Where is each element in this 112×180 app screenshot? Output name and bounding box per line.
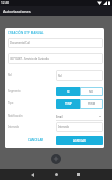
button[interactable]: AGREGAR [56, 136, 103, 145]
button[interactable]: Recent apps [67, 169, 90, 180]
button[interactable]: NO [80, 87, 103, 96]
staticText: TEMP [65, 102, 72, 106]
button[interactable]: Back [21, 169, 44, 180]
staticText: AGREGAR [73, 139, 86, 143]
staticText: 12:30 [1, 1, 10, 5]
staticText: 30710287 - Servicio de Custodia [10, 57, 49, 61]
staticText: Documento/Cuil [10, 41, 30, 45]
staticText: Autorizaciones [3, 9, 31, 14]
button[interactable]: Documento/Cuil [8, 38, 103, 48]
staticText: Rol [8, 73, 12, 77]
button[interactable]: PERM [80, 99, 103, 109]
staticText: Intervalo [8, 125, 19, 129]
button[interactable]: TEMP [56, 99, 80, 109]
staticText: Email [56, 115, 63, 119]
staticText: Notificación [8, 114, 23, 118]
staticText: Intervalo [58, 125, 69, 129]
button[interactable]: Intervalo [56, 122, 103, 132]
button[interactable]: Add authorization [51, 154, 61, 164]
button[interactable]: Home [45, 169, 67, 180]
staticText: Rol [58, 74, 62, 78]
button[interactable]: SI [56, 87, 80, 96]
staticText: CANCELAR [28, 138, 44, 142]
staticText: Segmento [8, 89, 21, 93]
staticText: CREACIÓN OTP MANUAL [8, 31, 44, 35]
staticText: Tipo [8, 101, 14, 105]
button[interactable]: Rol [56, 70, 103, 81]
staticText: PERM [88, 102, 96, 106]
button[interactable]: CANCELAR [25, 135, 47, 144]
staticText: SI [67, 90, 70, 94]
button[interactable]: Email [56, 112, 103, 121]
button[interactable]: 30710287 - Servicio de Custodia [8, 53, 103, 64]
staticText: NO [89, 90, 94, 94]
